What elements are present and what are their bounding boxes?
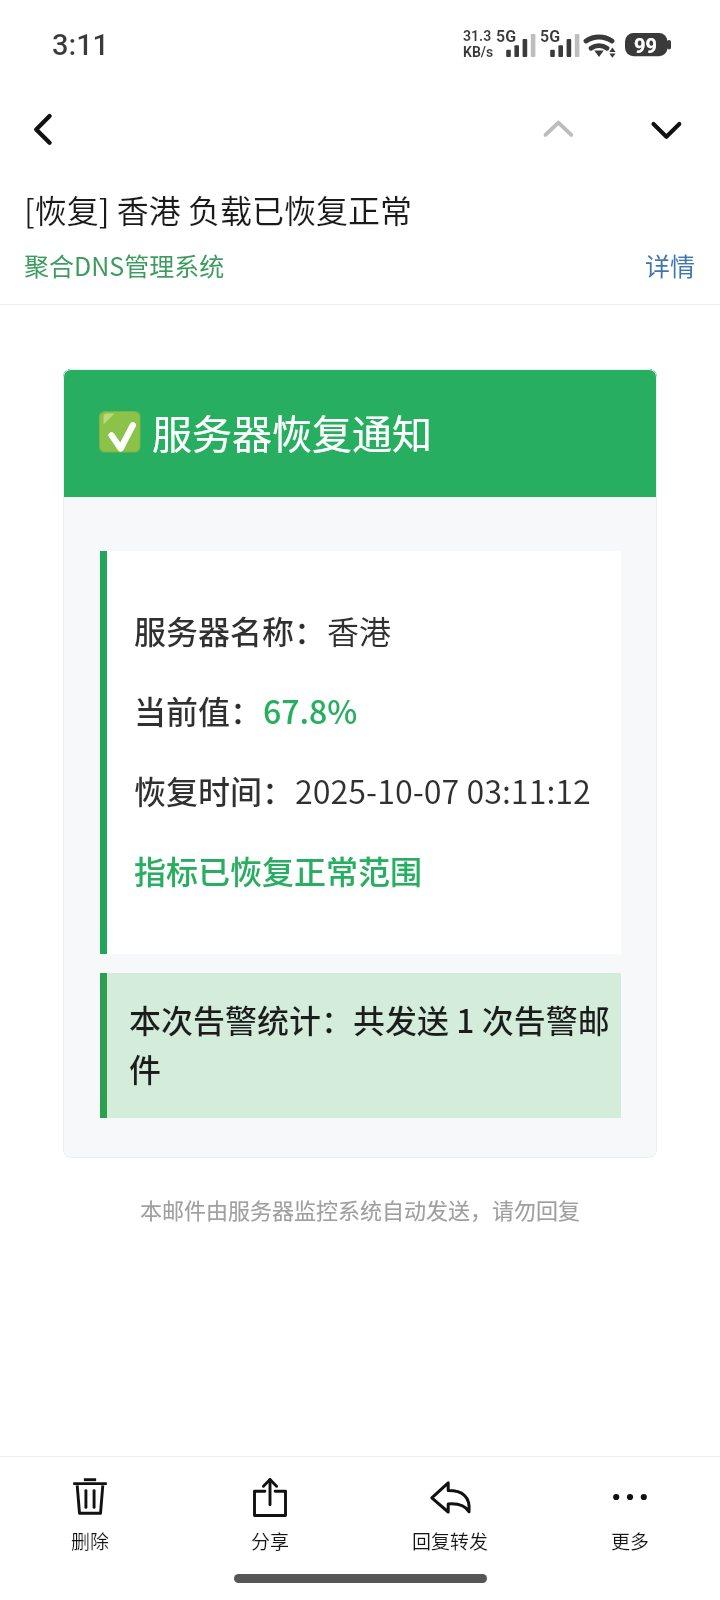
button[interactable]: 更多 (540, 1457, 720, 1567)
staticText: 聚合DNS管理系统 (24, 247, 225, 283)
staticText: 2025-10-07 03:11:12 (295, 767, 591, 813)
button[interactable]: 详情 (639, 241, 702, 289)
staticText: 3:11 (52, 28, 110, 62)
button[interactable]: 删除 (0, 1457, 180, 1567)
staticText: 恢复时间： (134, 767, 295, 813)
staticText: 99 (634, 34, 657, 57)
staticText: KB/s (463, 44, 494, 60)
staticText: 服务器恢复通知 (152, 403, 432, 461)
staticText: 本邮件由服务器监控系统自动发送，请勿回复 (0, 1193, 720, 1225)
staticText: 5G (540, 27, 561, 46)
staticText: 删除 (71, 1527, 110, 1555)
staticText: 指标已恢复正常范围 (134, 847, 423, 893)
staticText: 67.8% (263, 687, 358, 733)
staticText: 回复转发 (412, 1527, 489, 1555)
staticText: [恢复] 香港 负载已恢复正常 (24, 186, 412, 232)
button[interactable]: Next message (632, 96, 702, 166)
staticText: 详情 (645, 247, 696, 283)
staticText: 本次告警统计：共发送 1 次告警邮件 (129, 996, 621, 1091)
button[interactable]: 分享 (180, 1457, 360, 1567)
button[interactable]: 回复转发 (360, 1457, 540, 1567)
button[interactable]: Previous message (524, 96, 594, 166)
staticText: 更多 (611, 1527, 650, 1555)
staticText: 5G (496, 27, 517, 46)
staticText: 31.3 (463, 28, 492, 44)
staticText: 服务器名称： (134, 607, 327, 653)
button[interactable]: Back (9, 97, 81, 169)
staticText: 当前值： (134, 687, 263, 733)
staticText: 分享 (251, 1527, 290, 1555)
staticText: 香港 (327, 607, 392, 653)
